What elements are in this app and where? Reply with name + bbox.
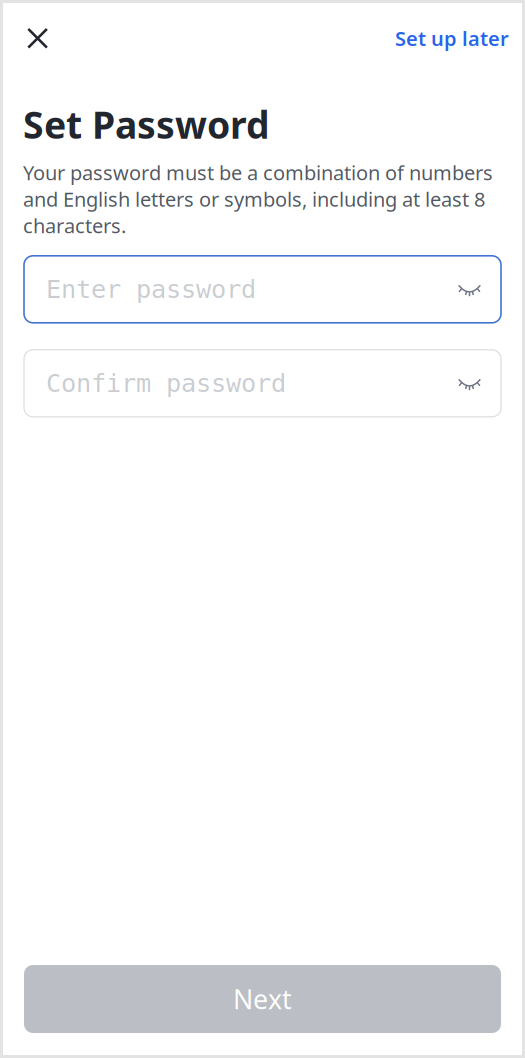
staticText: Your password must be a combination of n…: [23, 159, 493, 239]
button[interactable]: Show password: [448, 257, 490, 322]
staticText: Confirm password: [46, 369, 286, 398]
button[interactable]: Next: [24, 965, 501, 1033]
button[interactable]: Enter password: [24, 256, 448, 323]
staticText: Enter password: [46, 275, 256, 304]
button[interactable]: Close: [3, 17, 61, 60]
button[interactable]: Confirm password: [24, 350, 448, 417]
button[interactable]: Show confirmation password: [448, 351, 490, 416]
staticText: Next: [233, 981, 292, 1017]
button[interactable]: Set up later: [395, 12, 522, 65]
staticText: Set Password: [23, 100, 270, 149]
staticText: Set up later: [395, 25, 509, 52]
